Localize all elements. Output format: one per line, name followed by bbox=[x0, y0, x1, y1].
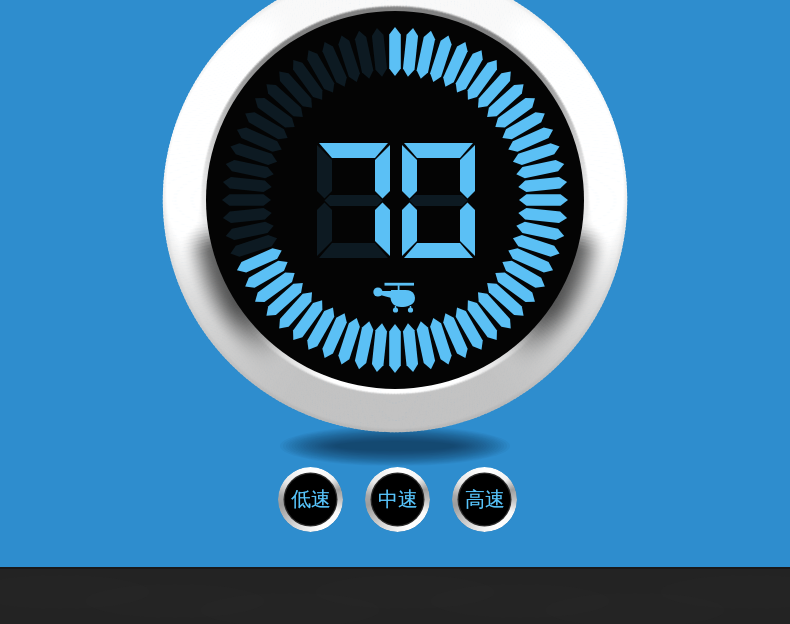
staticText: 高速 bbox=[465, 487, 505, 512]
button[interactable]: 低速 bbox=[278, 467, 343, 532]
button[interactable]: 中速 bbox=[365, 467, 430, 532]
staticText: 中速 bbox=[378, 487, 418, 512]
button[interactable]: 高速 bbox=[452, 467, 517, 532]
button[interactable]: Fan speed dial, 70 percent bbox=[164, 0, 627, 432]
staticText: 低速 bbox=[291, 487, 331, 512]
